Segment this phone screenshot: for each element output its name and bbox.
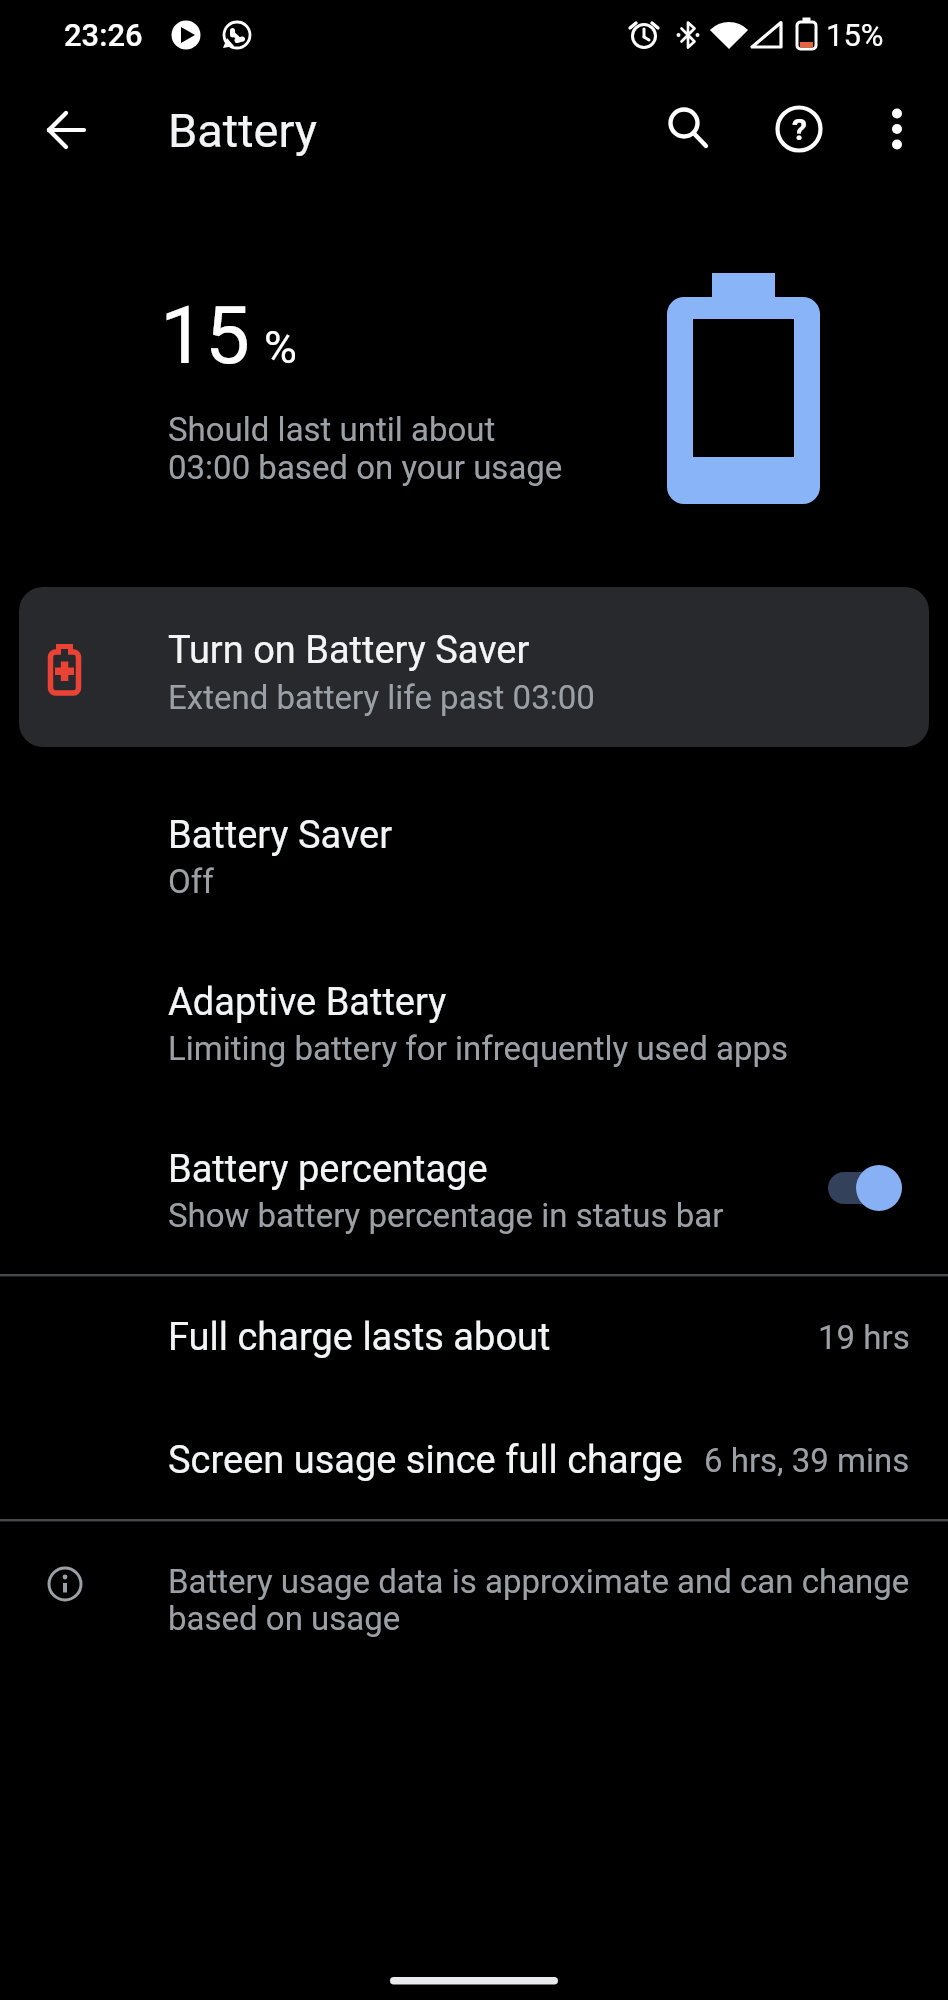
staticText: 15% xyxy=(826,17,884,53)
staticText: Battery percentage xyxy=(168,1147,488,1192)
staticText: Battery Saver xyxy=(168,813,393,858)
staticText: Battery usage data is approximate and ca… xyxy=(168,1562,910,1601)
staticText: Screen usage since full charge xyxy=(168,1438,683,1483)
staticText: Limiting battery for infrequently used a… xyxy=(168,1029,788,1068)
staticText: 15 xyxy=(160,289,250,383)
button[interactable] xyxy=(0,1283,948,1391)
staticText: Show battery percentage in status bar xyxy=(168,1196,724,1235)
staticText: Off xyxy=(168,862,214,901)
button[interactable] xyxy=(30,94,102,166)
button[interactable] xyxy=(0,1124,948,1259)
staticText: % xyxy=(264,321,297,374)
button[interactable] xyxy=(19,587,929,747)
button[interactable] xyxy=(0,957,948,1092)
staticText: Adaptive Battery xyxy=(168,980,447,1025)
staticText: Should last until about xyxy=(168,410,496,449)
button[interactable] xyxy=(820,1155,916,1221)
staticText: 03:00 based on your usage xyxy=(168,448,563,487)
button[interactable] xyxy=(861,93,933,165)
staticText: 19 hrs xyxy=(818,1318,910,1357)
button[interactable] xyxy=(648,94,720,166)
staticText: ? xyxy=(792,112,807,147)
button[interactable] xyxy=(0,790,948,925)
staticText: Full charge lasts about xyxy=(168,1315,551,1360)
staticText: 23:26 xyxy=(64,17,143,53)
staticText: based on usage xyxy=(168,1599,401,1638)
staticText: Battery xyxy=(168,103,318,158)
button[interactable] xyxy=(763,93,835,165)
button[interactable] xyxy=(0,1406,948,1514)
staticText: Extend battery life past 03:00 xyxy=(168,678,595,717)
staticText: 6 hrs, 39 mins xyxy=(704,1441,910,1480)
staticText: Turn on Battery Saver xyxy=(168,628,530,673)
